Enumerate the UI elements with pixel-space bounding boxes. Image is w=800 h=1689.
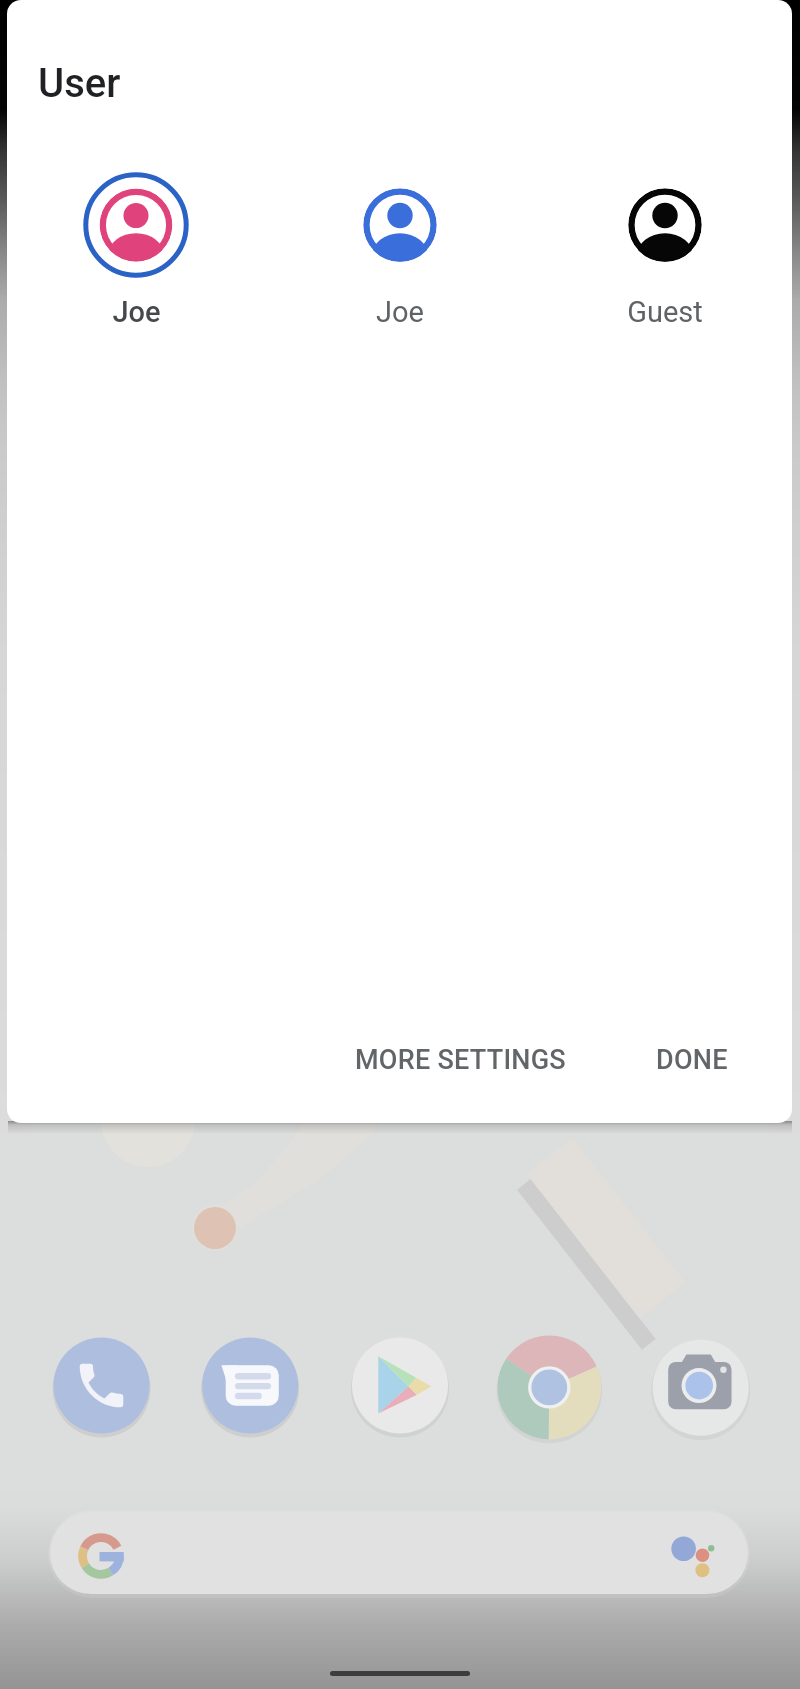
staticText: Joe [376, 295, 424, 329]
staticText: Guest [627, 295, 703, 329]
button[interactable]: DONE [650, 1035, 734, 1085]
button[interactable]: Switch to Guest [605, 165, 725, 329]
staticText: DONE [656, 1044, 728, 1076]
button[interactable]: MORE SETTINGS [349, 1035, 572, 1085]
button[interactable]: Switch to Joe [76, 165, 196, 329]
button[interactable]: Switch to Joe [340, 165, 460, 329]
staticText: User [38, 60, 121, 107]
staticText: MORE SETTINGS [355, 1044, 566, 1076]
staticText: Joe [112, 295, 161, 329]
